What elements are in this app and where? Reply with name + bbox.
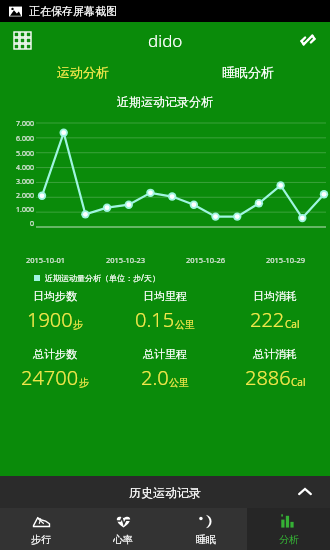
staticText: 3.000 (16, 177, 34, 187)
staticText: 5.000 (16, 149, 34, 159)
staticText: 总计里程 (143, 347, 187, 361)
staticText: 日均里程 (143, 289, 187, 303)
staticText: 总计步数 (33, 347, 77, 361)
button[interactable]: 睡眠 (164, 508, 247, 550)
staticText: 运动分析 (57, 64, 109, 80)
staticText: 222 (250, 306, 285, 333)
button[interactable]: 分析 (247, 508, 330, 550)
staticText: Cal (285, 317, 300, 331)
button[interactable]: 总计里程 (110, 347, 220, 391)
staticText: 近期运动记录分析 (117, 94, 213, 109)
staticText: 0.15 (135, 306, 175, 333)
button[interactable]: 日均步数 (0, 289, 110, 333)
staticText: 心率 (113, 533, 133, 546)
staticText: 7.000 (16, 119, 34, 129)
staticText: 24700 (21, 364, 79, 391)
staticText: 2.0 (141, 364, 169, 391)
staticText: 公里 (169, 376, 189, 389)
staticText: 2015-10-29 (266, 255, 306, 265)
button[interactable]: 心率 (82, 508, 164, 550)
staticText: 2015-10-26 (186, 255, 226, 265)
staticText: 2886 (245, 364, 291, 391)
staticText: 6.000 (16, 134, 34, 144)
button[interactable]: Menu (7, 25, 37, 55)
button[interactable]: 运动分析 (0, 58, 165, 86)
staticText: 睡眠分析 (222, 64, 274, 80)
staticText: 0 (29, 219, 34, 229)
button[interactable]: 步行 (0, 508, 82, 550)
staticText: 分析 (279, 533, 299, 546)
staticText: 近期运动量分析（单位：步/天） (45, 272, 160, 283)
button[interactable]: Link (293, 25, 323, 55)
staticText: 2015-10-23 (106, 255, 146, 265)
staticText: 步 (73, 318, 83, 331)
staticText: 2.000 (16, 191, 34, 201)
staticText: 日均步数 (33, 289, 77, 303)
button[interactable]: 历史运动记录 (0, 476, 330, 508)
staticText: 2015-10-01 (26, 255, 66, 265)
staticText: 1900 (27, 306, 73, 333)
button[interactable]: 日均消耗 (220, 289, 330, 333)
staticText: 历史运动记录 (129, 485, 201, 500)
staticText: 步 (79, 376, 89, 389)
staticText: 总计消耗 (253, 347, 297, 361)
staticText: 1.000 (16, 205, 34, 215)
button[interactable]: 总计步数 (0, 347, 110, 391)
button[interactable]: 总计消耗 (220, 347, 330, 391)
button[interactable]: 睡眠分析 (165, 58, 330, 86)
staticText: 正在保存屏幕截图 (29, 4, 117, 18)
staticText: Cal (291, 375, 306, 389)
staticText: 步行 (31, 533, 51, 546)
staticText: 公里 (175, 318, 195, 331)
button[interactable]: 日均里程 (110, 289, 220, 333)
staticText: 4.000 (16, 163, 34, 173)
staticText: 日均消耗 (253, 289, 297, 303)
staticText: 睡眠 (196, 533, 216, 546)
staticText: dido (148, 29, 183, 52)
other: Expand (294, 481, 316, 503)
